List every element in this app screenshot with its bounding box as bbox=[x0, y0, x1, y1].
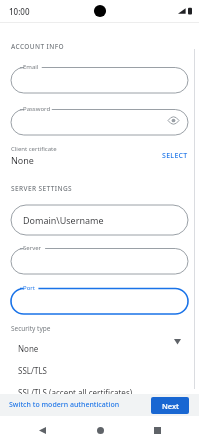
button[interactable]: Next bbox=[151, 397, 189, 414]
button[interactable]: Home bbox=[85, 416, 115, 444]
button[interactable]: Show password bbox=[166, 113, 180, 127]
button[interactable]: Email bbox=[11, 63, 188, 93]
button[interactable]: Client certificate bbox=[11, 145, 188, 166]
staticText: Domain\Username bbox=[23, 214, 104, 226]
staticText: None bbox=[11, 154, 34, 166]
staticText: Next bbox=[162, 401, 179, 411]
button[interactable]: Recent apps bbox=[142, 416, 172, 444]
button[interactable]: None bbox=[9, 338, 167, 358]
staticText: None bbox=[18, 343, 39, 354]
staticText: SERVER SETTINGS bbox=[11, 184, 72, 193]
button[interactable]: Back bbox=[27, 416, 57, 444]
staticText: SSL/TLS (accept all certificates) bbox=[18, 387, 133, 398]
button[interactable]: SSL/TLS (accept all certificates) bbox=[9, 382, 167, 402]
button[interactable]: Password bbox=[11, 105, 188, 135]
staticText: SSL/TLS bbox=[18, 365, 47, 376]
staticText: Switch to modern authentication bbox=[9, 400, 120, 410]
staticText: Security type bbox=[11, 324, 51, 333]
staticText: 10:00 bbox=[9, 6, 30, 17]
staticText: Password bbox=[23, 105, 51, 113]
button[interactable]: Switch to modern authentication bbox=[9, 400, 120, 410]
staticText: SELECT bbox=[162, 151, 188, 161]
button[interactable]: SSL/TLS bbox=[9, 360, 167, 380]
staticText: Port bbox=[23, 284, 35, 292]
staticText: Email bbox=[23, 63, 39, 71]
button[interactable]: SELECT bbox=[162, 151, 188, 161]
button[interactable]: Port bbox=[11, 284, 188, 314]
staticText: Server bbox=[23, 244, 42, 252]
button[interactable]: Domain\Username bbox=[11, 205, 188, 235]
button[interactable]: Server bbox=[11, 244, 188, 274]
staticText: Client certificate bbox=[11, 145, 57, 153]
staticText: ACCOUNT INFO bbox=[11, 42, 65, 51]
